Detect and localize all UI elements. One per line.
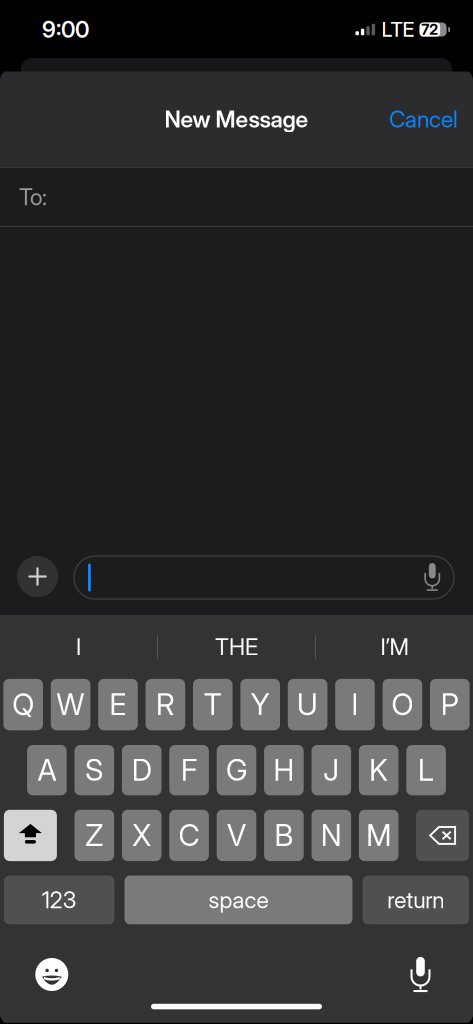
staticText: THE	[215, 633, 258, 661]
button[interactable]: J	[311, 745, 351, 795]
staticText: space	[208, 886, 268, 914]
staticText: New Message	[164, 105, 308, 133]
button[interactable]: W	[51, 679, 90, 730]
button[interactable]: Add attachment	[17, 556, 58, 597]
staticText: Y	[251, 687, 270, 722]
button[interactable]: Dictation	[394, 951, 446, 997]
button[interactable]: Z	[74, 810, 114, 861]
button[interactable]: V	[217, 810, 256, 861]
staticText: G	[226, 752, 247, 788]
staticText: E	[109, 687, 126, 722]
button[interactable]: return	[363, 875, 469, 924]
button[interactable]: T	[193, 679, 233, 730]
button[interactable]: F	[169, 745, 209, 795]
staticText: D	[132, 752, 152, 788]
staticText: LTE	[382, 17, 415, 42]
button[interactable]: I’M	[316, 615, 473, 679]
staticText: 72	[421, 21, 438, 38]
staticText: 123	[42, 886, 77, 914]
staticText: R	[156, 687, 175, 722]
button[interactable]: space	[124, 875, 352, 924]
staticText: L	[418, 752, 434, 788]
button[interactable]: B	[264, 810, 304, 861]
button[interactable]: X	[122, 810, 161, 861]
button[interactable]: U	[288, 679, 327, 730]
staticText: I	[76, 633, 81, 661]
staticText: X	[132, 818, 151, 853]
staticText: I	[351, 687, 358, 722]
button[interactable]: Emoji	[26, 951, 78, 997]
button[interactable]: Delete	[416, 810, 469, 861]
staticText: F	[181, 752, 197, 788]
button[interactable]: A	[27, 745, 67, 795]
staticText: N	[321, 818, 342, 853]
button[interactable]: Y	[240, 679, 280, 730]
button[interactable]: E	[98, 679, 138, 730]
staticText: 9:00	[42, 16, 89, 43]
staticText: V	[227, 818, 246, 853]
staticText: O	[391, 687, 413, 722]
button[interactable]: 123	[4, 875, 114, 924]
button[interactable]: Q	[3, 679, 43, 730]
staticText: C	[179, 818, 200, 853]
button[interactable]: M	[359, 810, 398, 861]
staticText: W	[57, 687, 85, 722]
button[interactable]: THE	[158, 615, 315, 679]
button[interactable]: Cancel	[381, 95, 466, 143]
staticText: Q	[12, 687, 34, 722]
staticText: Z	[85, 818, 103, 853]
button[interactable]: P	[430, 679, 470, 730]
staticText: H	[273, 752, 294, 788]
staticText: T	[204, 687, 222, 722]
button[interactable]: L	[406, 745, 446, 795]
button[interactable]: D	[122, 745, 161, 795]
staticText: I’M	[380, 633, 408, 661]
button[interactable]: R	[146, 679, 185, 730]
button[interactable]: O	[383, 679, 422, 730]
staticText: U	[297, 687, 318, 722]
button[interactable]: N	[311, 810, 351, 861]
staticText: S	[85, 752, 103, 788]
staticText: return	[387, 886, 444, 914]
staticText: A	[37, 752, 56, 788]
button[interactable]: Shift	[4, 810, 57, 861]
button[interactable]: I	[335, 679, 375, 730]
staticText: B	[274, 818, 293, 853]
button[interactable]: H	[264, 745, 304, 795]
staticText: P	[441, 687, 459, 722]
button[interactable]: S	[74, 745, 114, 795]
staticText: J	[323, 752, 339, 788]
staticText: Cancel	[389, 105, 458, 133]
button[interactable]: I	[0, 615, 157, 679]
staticText: To:	[19, 183, 47, 211]
staticText: M	[366, 818, 391, 853]
button[interactable]: C	[169, 810, 209, 861]
button[interactable]: G	[217, 745, 256, 795]
staticText: K	[369, 752, 388, 788]
button[interactable]: K	[359, 745, 398, 795]
